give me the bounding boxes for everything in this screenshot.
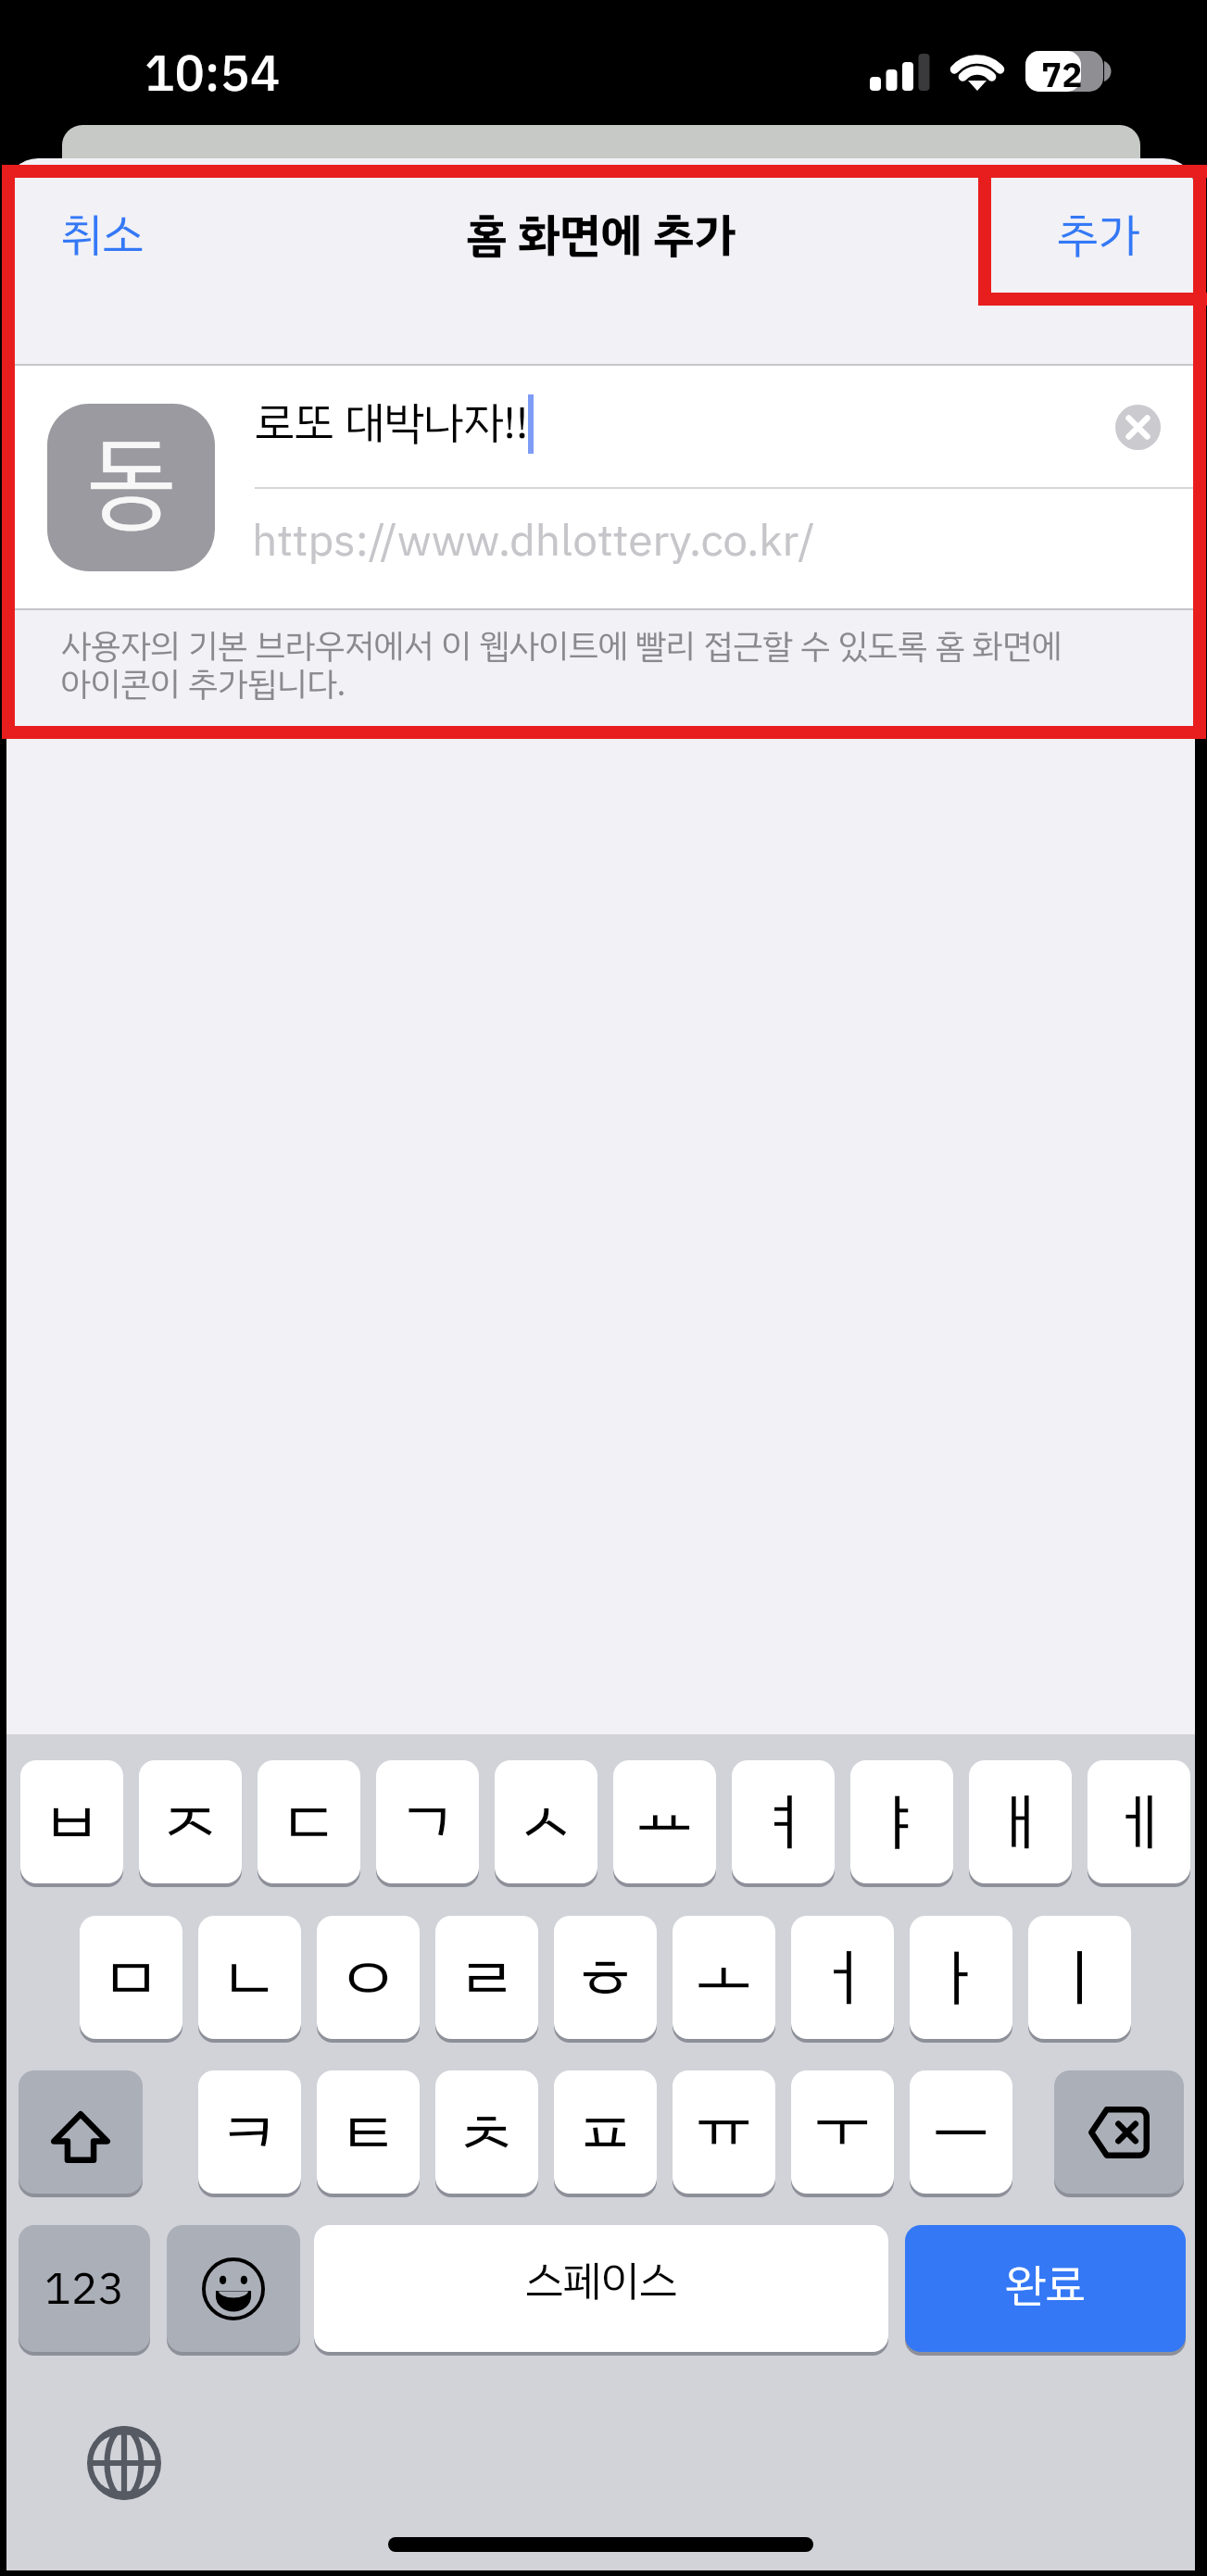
- staticText: ㅔ: [1112, 1776, 1166, 1868]
- button[interactable]: Numbers: [19, 2225, 150, 2352]
- button[interactable]: ㅎ: [554, 1916, 657, 2039]
- staticText: 스페이스: [525, 2249, 678, 2313]
- button[interactable]: ㅋ: [198, 2070, 301, 2194]
- staticText: ㅠ: [697, 2086, 751, 2178]
- staticText: 아이콘이 추가됩니다.: [61, 659, 346, 709]
- button[interactable]: ㅊ: [435, 2070, 538, 2194]
- staticText: ㅗ: [697, 1932, 751, 2023]
- button[interactable]: Change keyboard: [78, 2417, 170, 2509]
- button[interactable]: 취소: [15, 165, 191, 306]
- staticText: ㅣ: [1052, 1932, 1107, 2023]
- staticText: ㅁ: [104, 1932, 158, 2023]
- button[interactable]: ㄴ: [198, 1916, 301, 2039]
- button[interactable]: ㅡ: [910, 2070, 1012, 2194]
- staticText: 72: [1041, 50, 1083, 102]
- staticText: ㄴ: [222, 1932, 277, 2023]
- button[interactable]: ㅐ: [969, 1760, 1072, 1883]
- button[interactable]: Backspace: [1054, 2070, 1184, 2194]
- button[interactable]: Shift: [19, 2070, 143, 2194]
- button[interactable]: Clear text: [1109, 398, 1166, 456]
- button[interactable]: ㅁ: [80, 1916, 182, 2039]
- staticText: ㅂ: [44, 1776, 99, 1868]
- staticText: ㅐ: [993, 1776, 1048, 1868]
- staticText: ㅜ: [815, 2086, 870, 2178]
- staticText: https://www.dhlottery.co.kr/: [252, 507, 815, 574]
- button[interactable]: ㅕ: [732, 1760, 835, 1883]
- staticText: 로또 대박나자!!: [255, 390, 529, 456]
- button[interactable]: ㅗ: [673, 1916, 775, 2039]
- button[interactable]: ㅓ: [791, 1916, 894, 2039]
- staticText: ㅎ: [578, 1932, 633, 2023]
- staticText: 10:54: [145, 36, 281, 111]
- button[interactable]: ㄱ: [376, 1760, 479, 1883]
- staticText: ㅈ: [163, 1776, 218, 1868]
- button[interactable]: 스페이스: [314, 2225, 888, 2352]
- button[interactable]: ㄹ: [435, 1916, 538, 2039]
- button[interactable]: ㅜ: [791, 2070, 894, 2194]
- button[interactable]: ㄷ: [258, 1760, 360, 1883]
- staticText: ㄹ: [459, 1932, 514, 2023]
- staticText: ㅕ: [756, 1776, 811, 1868]
- button[interactable]: 추가: [1000, 165, 1195, 306]
- staticText: ㅍ: [578, 2086, 633, 2178]
- staticText: ㅏ: [934, 1932, 988, 2023]
- button[interactable]: ㅔ: [1088, 1760, 1190, 1883]
- staticText: 취소: [61, 201, 145, 270]
- button[interactable]: ㅑ: [850, 1760, 953, 1883]
- button[interactable]: Emoji: [167, 2225, 300, 2352]
- staticText: ㅑ: [874, 1776, 929, 1868]
- staticText: ㅋ: [222, 2086, 277, 2178]
- staticText: 완료: [1006, 2252, 1086, 2319]
- button[interactable]: ㅌ: [317, 2070, 420, 2194]
- staticText: ㅌ: [341, 2086, 396, 2178]
- button[interactable]: ㅈ: [139, 1760, 242, 1883]
- button[interactable]: ㅇ: [317, 1916, 420, 2039]
- staticText: ㅓ: [815, 1932, 870, 2023]
- staticText: 홈 화면에 추가: [466, 201, 736, 270]
- button[interactable]: ㅠ: [673, 2070, 775, 2194]
- button[interactable]: 완료: [905, 2225, 1186, 2352]
- staticText: ㄷ: [282, 1776, 336, 1868]
- staticText: 사용자의 기본 브라우저에서 이 웹사이트에 빨리 접근할 수 있도록 홈 화면…: [61, 621, 1062, 671]
- button[interactable]: ㅍ: [554, 2070, 657, 2194]
- staticText: ㅛ: [637, 1776, 692, 1868]
- button[interactable]: ㅏ: [910, 1916, 1012, 2039]
- staticText: 추가: [1057, 201, 1140, 270]
- staticText: ㅇ: [341, 1932, 396, 2023]
- button[interactable]: ㅛ: [613, 1760, 716, 1883]
- staticText: 123: [44, 2256, 125, 2322]
- staticText: ㅊ: [459, 2086, 514, 2178]
- button[interactable]: ㅅ: [495, 1760, 597, 1883]
- staticText: ㅅ: [519, 1776, 573, 1868]
- button[interactable]: ㅣ: [1028, 1916, 1131, 2039]
- staticText: ㄱ: [400, 1776, 455, 1868]
- button[interactable]: ㅂ: [20, 1760, 123, 1883]
- staticText: 동: [87, 408, 176, 557]
- staticText: ㅡ: [934, 2086, 988, 2178]
